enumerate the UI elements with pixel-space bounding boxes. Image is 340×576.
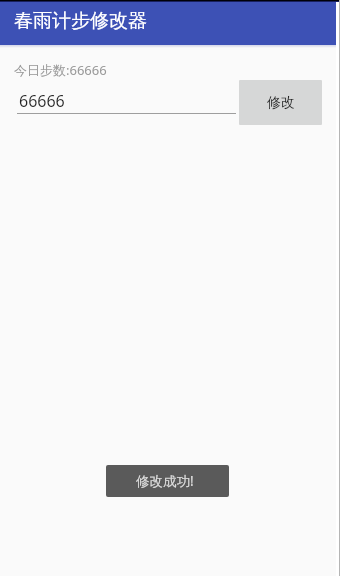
staticText: 修改成功! [136,472,194,490]
button[interactable]: 修改 [239,80,322,125]
button[interactable]: Step count input field [10,84,240,116]
staticText: 修改 [267,94,295,112]
staticText: 66666 [19,90,65,112]
staticText: 今日步数:66666 [14,61,107,79]
staticText: 春雨计步修改器 [14,9,147,33]
